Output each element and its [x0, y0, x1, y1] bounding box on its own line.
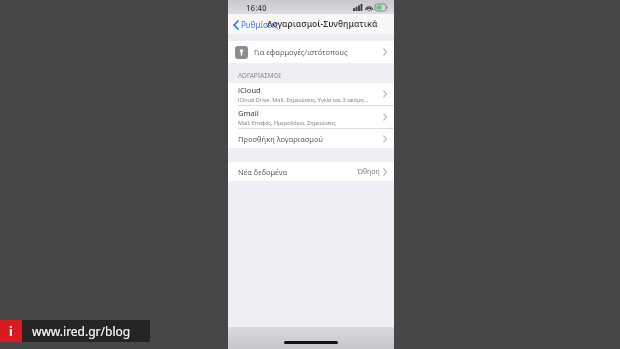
button[interactable]: Για εφαρμογές/ιστότοπους: [228, 41, 394, 63]
staticText: Ώθηση: [357, 167, 380, 177]
staticText: Λογαριασμοί-Συνθηματικά: [267, 18, 378, 30]
staticText: Mail, Επαφές, Ημερολόγιο, Σημειώσεις: [238, 119, 336, 126]
staticText: Προσθήκη λογαριασμού: [238, 134, 324, 144]
button[interactable]: Gmail: [228, 106, 394, 128]
staticText: i: [9, 322, 13, 340]
button[interactable]: Προσθήκη λογαριασμού: [228, 129, 394, 148]
staticText: www.ired.gr/blog: [32, 323, 131, 339]
staticText: Για εφαρμογές/ιστότοπους: [254, 47, 348, 57]
staticText: Νέα δεδομένα: [238, 167, 288, 177]
staticText: iCloud Drive, Mail, Σημειώσεις, Υγεία κα…: [238, 96, 368, 103]
button[interactable]: Ρυθμίσεις: [228, 17, 281, 32]
button[interactable]: iCloud: [228, 83, 394, 105]
staticText: ΛΟΓΑΡΙΑΣΜΟΙ: [238, 71, 282, 80]
staticText: Ρυθμίσεις: [241, 19, 278, 30]
staticText: 16:40: [246, 2, 267, 13]
staticText: Gmail: [238, 108, 259, 118]
staticText: iCloud: [238, 85, 261, 95]
button[interactable]: Νέα δεδομένα: [228, 162, 394, 181]
